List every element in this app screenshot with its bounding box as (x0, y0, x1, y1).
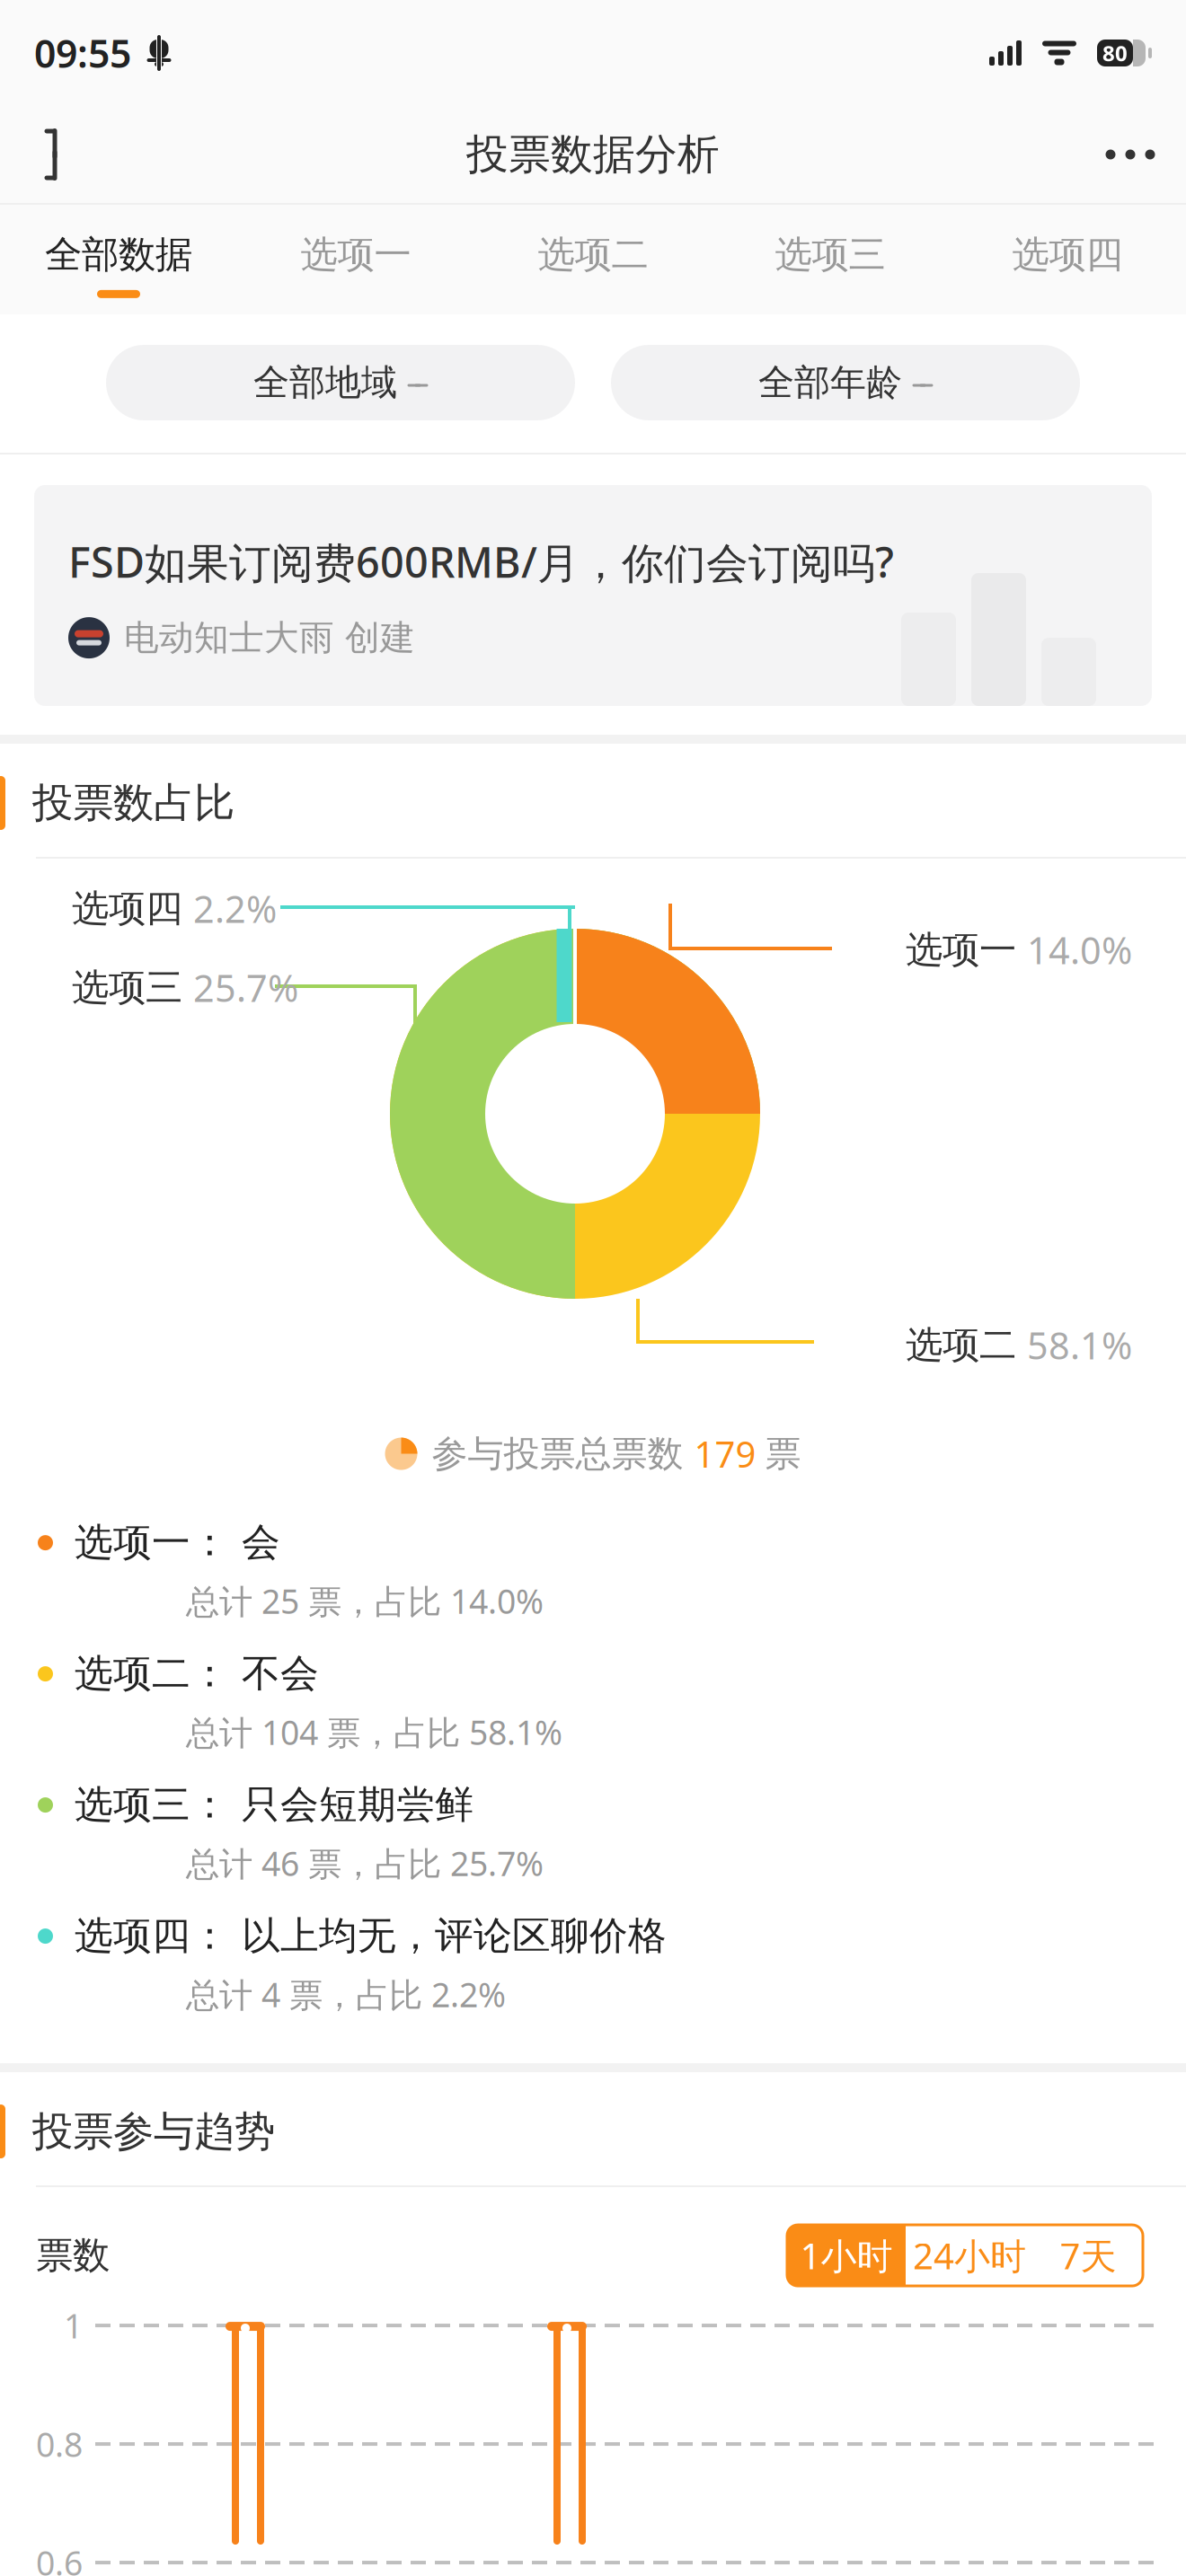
button[interactable]: 选项一 (237, 205, 474, 314)
staticText: 票 (765, 1432, 801, 1476)
staticText: 1小时 (800, 2232, 893, 2279)
staticText: 选项二 (538, 232, 648, 277)
staticText: 选项二 (906, 1322, 1016, 1368)
staticText: 全部数据 (45, 232, 192, 277)
button[interactable]: 选项二 (474, 205, 712, 314)
button[interactable]: More options (1087, 111, 1173, 198)
staticText: 选项一： (75, 1519, 229, 1566)
button[interactable]: 全部年龄 (611, 345, 1080, 420)
staticText: 会 (242, 1519, 280, 1566)
staticText: 选项一 (301, 232, 411, 277)
staticText: 总计 25 票，占比 14.0% (186, 1579, 544, 1623)
staticText: 电动知士大雨 创建 (124, 617, 415, 659)
staticText: 总计 104 票，占比 58.1% (186, 1710, 562, 1754)
staticText: 只会短期尝鲜 (242, 1781, 474, 1828)
button[interactable]: 选项四 (949, 205, 1186, 314)
button[interactable]: 7天 (1033, 2225, 1143, 2286)
staticText: 2.2% (193, 884, 277, 933)
staticText: 不会 (242, 1650, 319, 1697)
staticText: 0.6 (36, 2540, 83, 2576)
staticText: 选项三： (75, 1781, 229, 1828)
staticText: 投票数占比 (32, 778, 235, 828)
staticText: 1 (64, 2303, 83, 2348)
staticText: 58.1% (1027, 1320, 1132, 1370)
staticText: 0.8 (36, 2422, 83, 2466)
staticText: 投票参与趋势 (32, 2106, 275, 2156)
staticText: 投票数据分析 (466, 129, 720, 180)
staticText: 179 (694, 1430, 756, 1478)
staticText: 选项四 (72, 886, 182, 931)
staticText: FSD如果订阅费600RMB/月，你们会订阅吗? (68, 534, 894, 589)
staticText: 选项二： (75, 1650, 229, 1697)
staticText: 选项三 (775, 232, 885, 277)
staticText: 14.0% (1027, 925, 1132, 974)
button[interactable]: 24小时 (906, 2225, 1033, 2286)
staticText: 09:55 (34, 28, 131, 79)
staticText: 选项四 (1012, 232, 1123, 277)
staticText: 总计 4 票，占比 2.2% (186, 1972, 506, 2017)
staticText: 选项四： (75, 1912, 229, 1959)
button[interactable]: Back (13, 111, 90, 198)
button[interactable]: 全部地域 (106, 345, 575, 420)
staticText: 全部年龄 (758, 361, 902, 405)
staticText: 以上均无，评论区聊价格 (242, 1912, 667, 1959)
staticText: 选项三 (72, 965, 182, 1010)
button[interactable]: 全部数据 (0, 205, 237, 314)
button[interactable]: 1小时 (787, 2225, 906, 2286)
staticText: 25.7% (193, 963, 298, 1012)
staticText: 票数 (36, 2233, 110, 2278)
staticText: 7天 (1060, 2232, 1116, 2279)
staticText: 80 (1102, 39, 1128, 67)
staticText: 选项一 (906, 927, 1016, 973)
staticText: 24小时 (913, 2232, 1026, 2279)
button[interactable]: 选项三 (712, 205, 949, 314)
staticText: 总计 46 票，占比 25.7% (186, 1841, 544, 1885)
staticText: 全部地域 (253, 361, 397, 405)
staticText: 参与投票总票数 (432, 1432, 683, 1476)
